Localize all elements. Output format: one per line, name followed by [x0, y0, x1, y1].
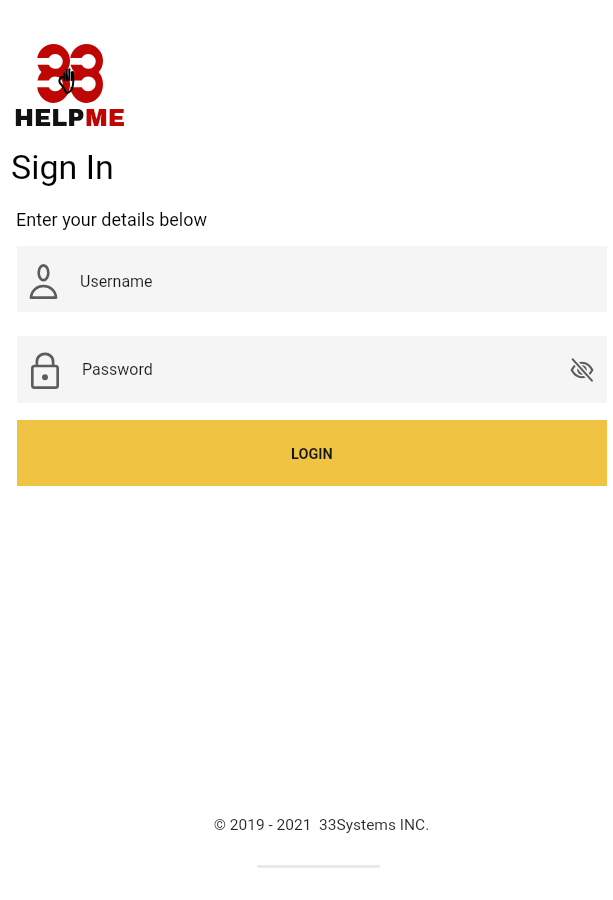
staticText: ME	[85, 105, 125, 131]
staticText: Username	[80, 272, 153, 291]
button[interactable]: LOGIN	[17, 420, 607, 486]
staticText: Enter your details below	[16, 209, 208, 230]
staticText: Sign In	[11, 147, 114, 187]
staticText: Password	[82, 360, 153, 379]
staticText: HELP	[14, 105, 85, 131]
button[interactable]: Username	[17, 246, 607, 312]
staticText: LOGIN	[291, 446, 333, 463]
staticText: © 2019 - 2021 33Systems INC.	[15, 816, 613, 834]
button[interactable]: Password	[17, 336, 607, 403]
button[interactable]: Show password	[560, 348, 604, 392]
